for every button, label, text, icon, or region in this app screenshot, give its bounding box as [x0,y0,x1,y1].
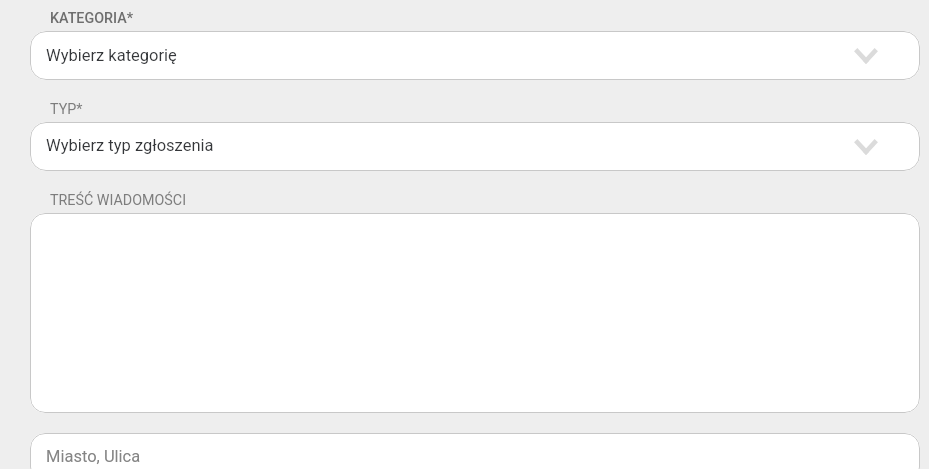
staticText: KATEGORIA* [50,10,134,27]
staticText: TYP* [50,101,83,118]
staticText: Wybierz kategorię [46,46,177,65]
button[interactable]: Miasto, Ulica [30,433,920,469]
button[interactable]: Rozwiń listę kategorii [844,31,888,80]
button[interactable] [30,213,920,413]
staticText: Miasto, Ulica [46,447,141,466]
button[interactable]: Wybierz kategorię [30,31,920,80]
button[interactable]: Wybierz typ zgłoszenia [30,122,920,171]
staticText: Wybierz typ zgłoszenia [46,136,214,155]
button[interactable]: Rozwiń listę typów zgłoszenia [844,122,888,171]
staticText: TREŚĆ WIADOMOŚCI [50,192,187,209]
